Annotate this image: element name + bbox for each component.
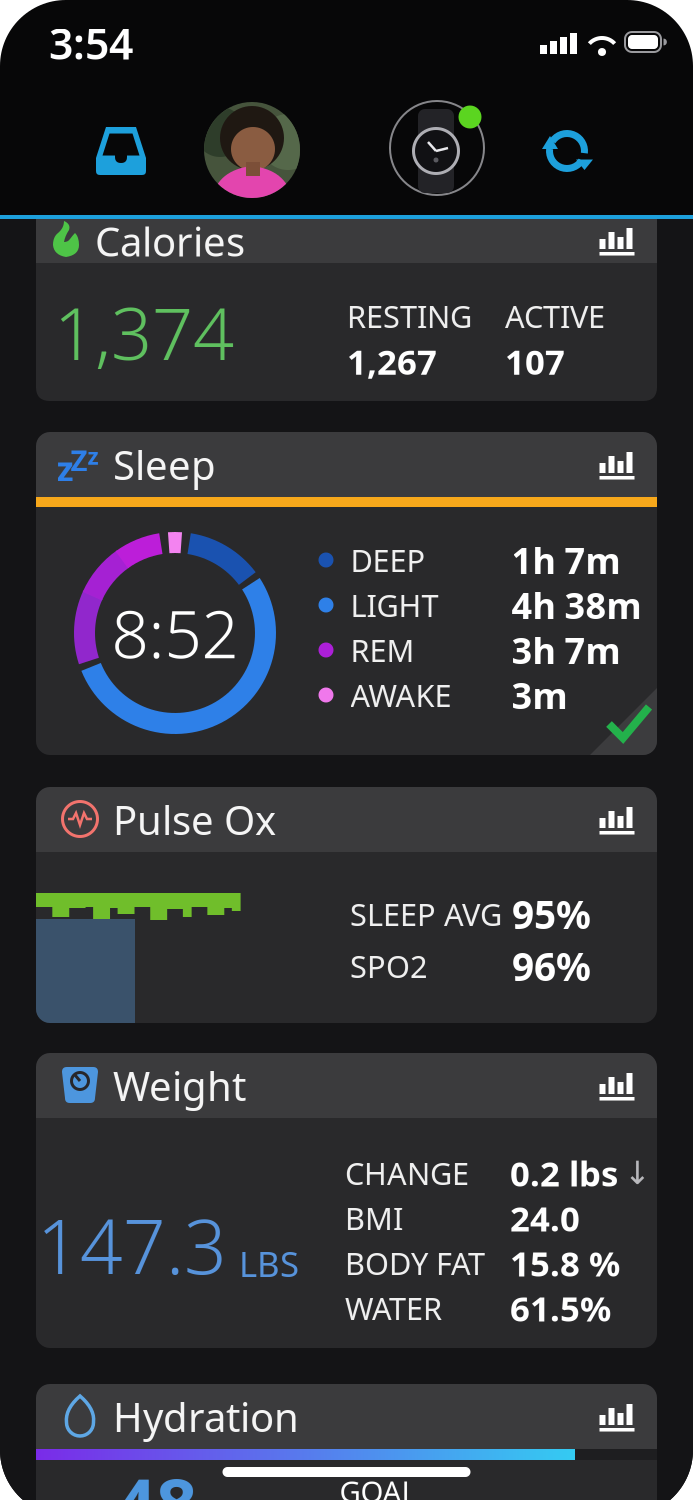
staticText: LIGHT [350,585,438,625]
staticText: DEEP [350,540,425,580]
staticText: SLEEP AVG [350,894,502,934]
staticText: ACTIVE [505,296,605,336]
staticText: 8:52 [111,590,238,676]
staticText: GOAL [339,1471,416,1500]
staticText: LBS [239,1240,299,1286]
staticText: 3:54 [49,15,133,71]
staticText: 1h 7m [511,536,620,584]
button[interactable]: Hydration [36,1384,657,1500]
button[interactable]: Sync [535,119,599,183]
staticText: 61.5% [510,1285,611,1331]
staticText: WATER [345,1288,442,1328]
staticText: ↓ [624,1155,651,1191]
staticText: Sleep [113,438,216,491]
staticText: 0.2 lbs [510,1150,618,1196]
staticText: Calories [95,214,245,267]
button[interactable]: z [36,432,657,755]
staticText: RESTING [347,296,472,336]
button[interactable]: Profile [204,102,300,198]
staticText: Pulse Ox [113,793,276,846]
button[interactable]: Connected device [389,100,485,196]
staticText: 3m [511,671,567,719]
staticText: AWAKE [350,675,451,715]
button[interactable]: Pulse Ox [36,787,657,1023]
staticText: z [56,445,73,491]
staticText: 96% [512,940,591,992]
staticText: 3h 7m [511,626,620,674]
staticText: BODY FAT [345,1243,485,1283]
staticText: 15.8 % [510,1240,620,1286]
staticText: SPO2 [350,946,428,986]
button[interactable]: Weight [36,1053,657,1348]
staticText: Z [70,440,87,479]
staticText: 48 [115,1455,197,1500]
staticText: Weight [113,1059,246,1112]
staticText: 1,267 [347,338,437,384]
staticText: REM [350,630,414,670]
staticText: 107 [505,338,565,384]
staticText: z [87,441,98,471]
staticText: 24.0 [510,1195,580,1241]
staticText: 1,374 [54,284,234,380]
staticText: 4h 38m [511,581,641,629]
staticText: Hydration [113,1390,299,1443]
staticText: BMI [345,1198,403,1238]
staticText: 95% [512,888,591,940]
staticText: CHANGE [345,1153,469,1193]
button[interactable]: Inbox [86,116,156,186]
button[interactable]: Calories [36,219,657,401]
staticText: 147.3 [37,1195,227,1295]
